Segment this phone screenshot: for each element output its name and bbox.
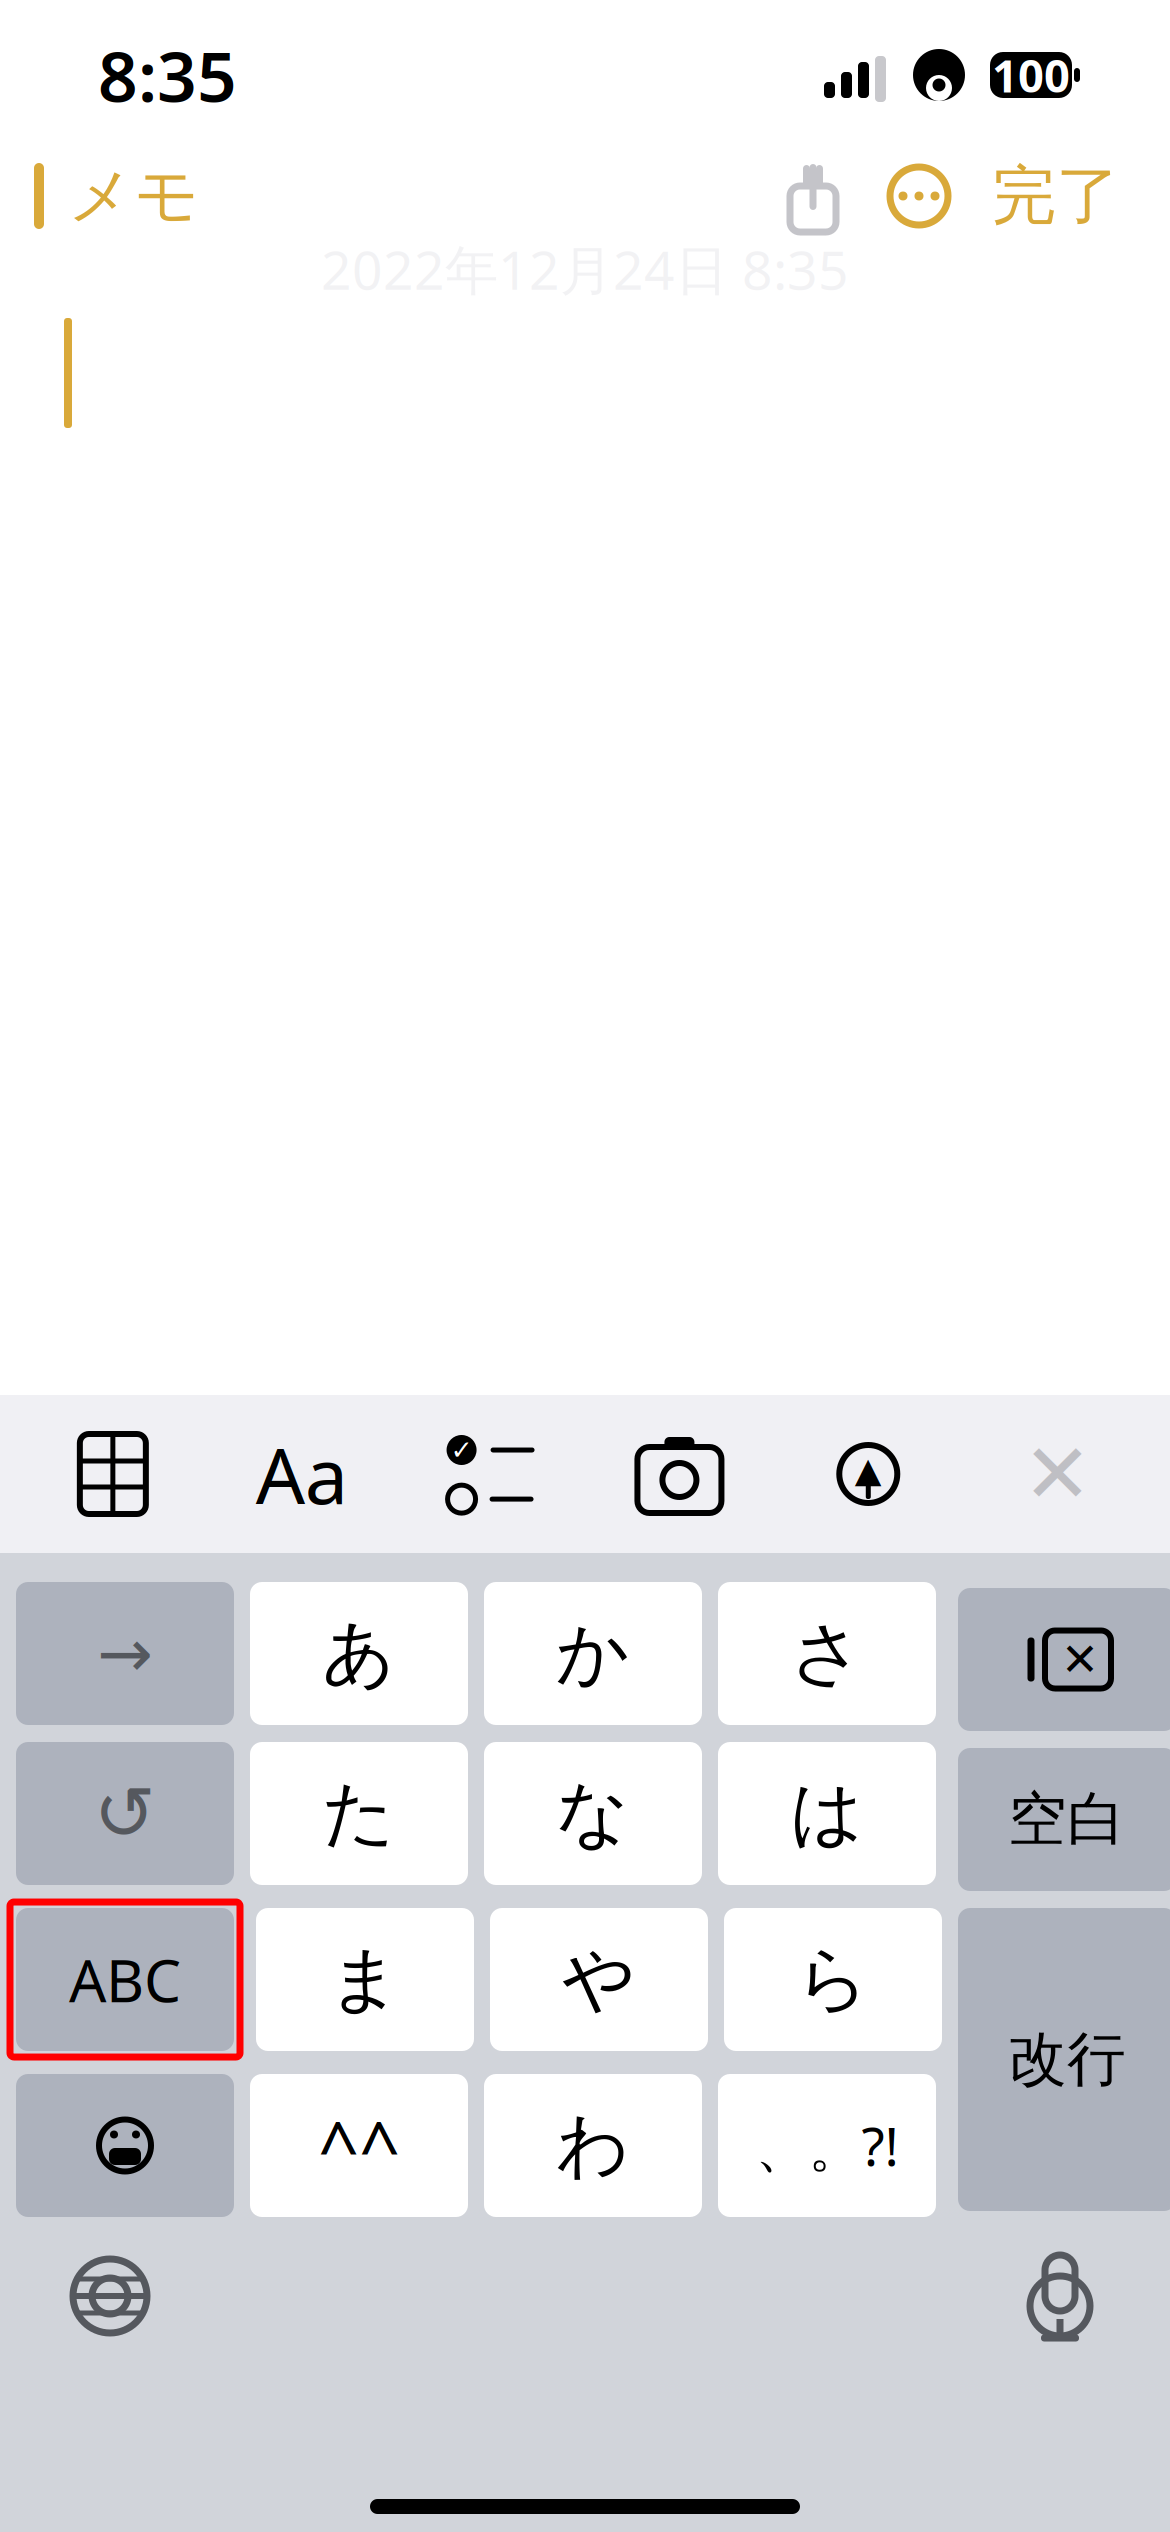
button[interactable]: キーボードを切り替え: [50, 2241, 170, 2351]
staticText: 、。?!: [755, 2110, 898, 2181]
button[interactable]: な: [484, 1742, 702, 1885]
staticText: 2022年12月24日 8:35: [321, 234, 849, 304]
staticText: 完了: [992, 157, 1120, 235]
staticText: な: [556, 1769, 630, 1858]
button[interactable]: 改行: [958, 1908, 1170, 2211]
staticText: わ: [556, 2101, 630, 2190]
staticText: →: [97, 1616, 153, 1691]
staticText: た: [322, 1769, 396, 1858]
button[interactable]: メモ: [0, 143, 200, 249]
staticText: 8:35: [98, 29, 237, 121]
button[interactable]: わ: [484, 2074, 702, 2217]
staticText: ABC: [69, 1940, 181, 2018]
staticText: ^^: [318, 2098, 400, 2193]
button[interactable]: ら: [724, 1908, 942, 2051]
staticText: か: [556, 1609, 630, 1698]
button[interactable]: 絵文字: [16, 2074, 234, 2217]
button[interactable]: 表: [43, 1395, 183, 1553]
staticText: ✕: [1023, 1427, 1092, 1521]
staticText: あ: [322, 1609, 396, 1698]
button[interactable]: や: [490, 1908, 708, 2051]
staticText: ✓: [451, 1435, 473, 1465]
button[interactable]: その他: [864, 155, 974, 237]
button[interactable]: ^^: [250, 2074, 468, 2217]
button[interactable]: 次候補: [16, 1582, 234, 1725]
button[interactable]: ま: [256, 1908, 474, 2051]
button[interactable]: マークアップ: [798, 1395, 938, 1553]
button[interactable]: 音声入力: [1000, 2241, 1120, 2351]
staticText: や: [562, 1935, 636, 2024]
staticText: メモ: [68, 157, 200, 235]
staticText: ✕: [1061, 1634, 1099, 1685]
button[interactable]: 共有: [762, 149, 864, 243]
button[interactable]: さ: [718, 1582, 936, 1725]
button[interactable]: た: [250, 1742, 468, 1885]
button[interactable]: は: [718, 1742, 936, 1885]
button[interactable]: Aa: [232, 1395, 372, 1553]
button[interactable]: ABC: [10, 1902, 240, 2057]
staticText: さ: [790, 1609, 864, 1698]
staticText: ら: [796, 1935, 870, 2024]
staticText: 改行: [1008, 2023, 1126, 2096]
button[interactable]: カメラ: [609, 1395, 749, 1553]
staticText: ▲: [855, 1450, 882, 1490]
button[interactable]: 空白: [958, 1748, 1170, 1891]
button[interactable]: チェックリスト: [421, 1395, 561, 1553]
button[interactable]: 取り消し: [16, 1742, 234, 1885]
button[interactable]: 完了: [974, 147, 1138, 245]
staticText: 空白: [1008, 1783, 1126, 1856]
staticText: 100: [992, 45, 1070, 105]
button[interactable]: か: [484, 1582, 702, 1725]
button[interactable]: あ: [250, 1582, 468, 1725]
staticText: は: [790, 1769, 864, 1858]
button[interactable]: ✕: [958, 1588, 1170, 1731]
button[interactable]: 閉じる: [987, 1395, 1127, 1553]
staticText: ↺: [93, 1771, 156, 1856]
staticText: Aa: [256, 1423, 348, 1525]
button[interactable]: 、。?!: [718, 2074, 936, 2217]
staticText: ま: [328, 1935, 402, 2024]
